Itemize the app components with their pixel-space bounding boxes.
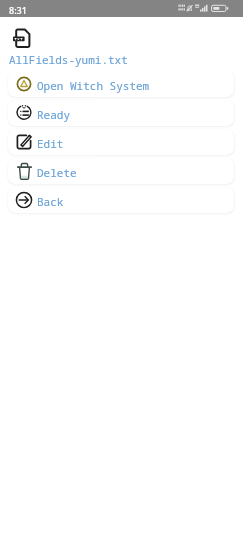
staticText: Edit bbox=[37, 136, 64, 151]
staticText: AllFields-yumi.txt bbox=[9, 52, 128, 67]
button[interactable]: Ready bbox=[8, 100, 234, 126]
button[interactable]: Back bbox=[8, 187, 234, 213]
staticText: Ready bbox=[37, 107, 70, 122]
staticText: 8:31 bbox=[9, 4, 27, 16]
other: Text file bbox=[13, 29, 33, 49]
staticText: Open Witch System bbox=[37, 78, 150, 93]
staticText: Delete bbox=[37, 165, 77, 180]
button[interactable]: Edit bbox=[8, 129, 234, 155]
button[interactable]: Open Witch System bbox=[8, 71, 234, 97]
button[interactable]: Delete bbox=[8, 158, 234, 184]
staticText: Back bbox=[37, 194, 64, 209]
